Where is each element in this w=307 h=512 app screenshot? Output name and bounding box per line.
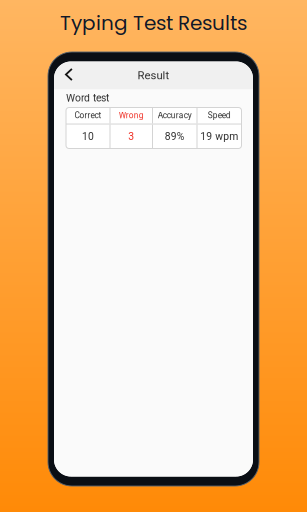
staticText: 19 wpm — [200, 130, 238, 142]
staticText: 89% — [165, 130, 185, 142]
staticText: Correct — [74, 111, 101, 120]
button[interactable]: Back — [57, 61, 81, 89]
staticText: Word test — [66, 92, 109, 104]
staticText: Speed — [208, 111, 231, 120]
staticText: Wrong — [119, 111, 144, 120]
staticText: Typing Test Results — [60, 9, 247, 37]
staticText: Accuracy — [158, 111, 192, 120]
staticText: Result — [137, 69, 169, 82]
staticText: 10 — [82, 130, 94, 142]
staticText: 3 — [128, 130, 134, 142]
